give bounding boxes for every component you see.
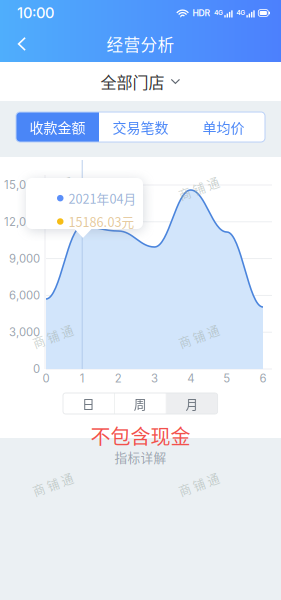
staticText: 10:00 (17, 4, 54, 22)
staticText: 0 (33, 362, 40, 376)
staticText: 商 铺 通 (32, 476, 74, 493)
staticText: 交易笔数 (112, 117, 168, 137)
staticText: 周 (134, 394, 147, 413)
staticText: 商 铺 通 (178, 476, 220, 493)
staticText: 商 铺 通 (178, 328, 220, 345)
button[interactable]: 月 (167, 393, 218, 414)
staticText: 15186.03元 (68, 212, 134, 231)
staticText: 商 铺 通 (32, 328, 74, 345)
button[interactable]: 周 (115, 393, 166, 414)
staticText: 商 铺 通 (32, 180, 74, 197)
staticText: 单均价 (202, 117, 244, 137)
staticText: 4G (236, 8, 245, 17)
staticText: 6,000 (9, 288, 40, 302)
staticText: 3,000 (9, 325, 40, 339)
staticText: 4G (214, 8, 223, 17)
button[interactable]: Back (5, 27, 39, 61)
staticText: 全部门店 (100, 70, 164, 93)
staticText: 15,000 (4, 178, 40, 192)
staticText: 5 (223, 372, 230, 385)
button[interactable]: 收款金额 (16, 112, 99, 142)
staticText: 3 (151, 372, 158, 385)
staticText: 12,000 (4, 215, 40, 229)
staticText: 0 (42, 372, 49, 385)
staticText: 9,000 (9, 252, 40, 265)
button[interactable]: 日 (63, 393, 114, 414)
staticText: 日 (82, 394, 95, 413)
staticText: 经营分析 (106, 32, 174, 56)
button[interactable]: 全部门店 (0, 62, 281, 101)
staticText: 月 (186, 394, 199, 413)
staticText: 商 铺 通 (178, 180, 220, 197)
staticText: 2021年04月 (68, 189, 136, 207)
button[interactable]: 指标详解 (0, 448, 281, 466)
staticText: 不包含现金 (90, 421, 190, 450)
staticText: 1 (80, 372, 85, 385)
staticText: 6 (259, 372, 266, 385)
staticText: 4 (187, 372, 194, 385)
staticText: HDR (192, 8, 210, 18)
button[interactable]: 交易笔数 (99, 112, 182, 142)
staticText: 指标详解 (114, 448, 166, 466)
button[interactable]: 单均价 (182, 112, 265, 142)
staticText: 收款金额 (29, 117, 85, 137)
staticText: 2 (115, 372, 122, 385)
